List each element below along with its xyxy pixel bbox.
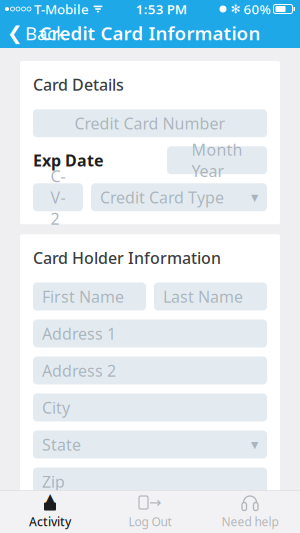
staticText: ▾ [251,189,258,205]
button[interactable]: Address 1 [33,319,267,347]
staticText: Back [25,21,66,45]
button[interactable]: City [33,393,267,421]
button[interactable]: Last Name [154,282,267,310]
staticText: Last Name [163,286,243,307]
button[interactable]: Zip [33,467,267,495]
staticText: 60% [243,0,270,18]
staticText: Credit Card Information [39,21,260,45]
staticText: Address 2 [42,360,116,381]
staticText: City [42,397,70,418]
staticText: Month Year [191,139,242,181]
staticText: Zip [42,471,65,492]
staticText: → [149,494,161,511]
button[interactable]: Credit Card Type [91,183,267,211]
staticText: 1:53 PM [136,0,187,18]
button[interactable]: → [100,489,200,533]
staticText: ❮ [7,22,23,44]
staticText: Address 1 [42,323,116,344]
button[interactable]: CV2 [33,183,83,211]
staticText: T-Mobile [31,0,89,18]
staticText: Exp Date [33,150,104,171]
staticText: First Name [42,286,124,307]
staticText: Credit Card Number [74,113,225,134]
staticText: ▲ [44,490,55,507]
button[interactable]: Need help [200,489,300,533]
button[interactable]: First Name [33,282,146,310]
button[interactable]: ❮ [0,18,73,48]
button[interactable]: State [33,430,267,458]
staticText: Activity [29,513,71,529]
staticText: Credit Card Type [100,187,224,208]
button[interactable]: Address 2 [33,356,267,384]
button[interactable]: Credit Card Number [33,109,267,137]
staticText: Log Out [128,513,171,529]
staticText: ▾ [251,436,258,453]
staticText: ✻ [230,2,240,16]
staticText: Card Details [33,74,124,95]
staticText: CV2 [50,165,65,229]
button[interactable]: Month Year [167,146,267,174]
staticText: Need help [221,513,278,529]
staticText: Card Holder Information [33,247,221,268]
button[interactable]: ▲ [0,489,100,533]
staticText: State [42,434,81,455]
